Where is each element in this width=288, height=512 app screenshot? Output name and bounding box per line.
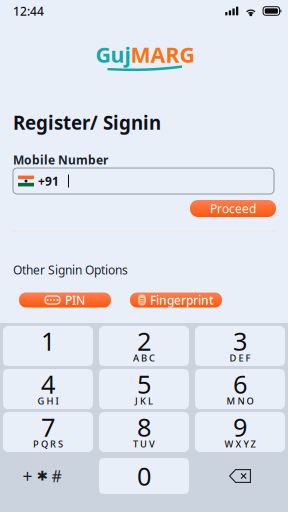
staticText: 3 xyxy=(233,324,247,358)
staticText: 8 xyxy=(137,410,151,444)
button[interactable]: 7 xyxy=(3,412,93,452)
button[interactable]: 2 xyxy=(99,326,189,366)
staticText: 2 xyxy=(137,324,151,358)
button[interactable]: 9 xyxy=(195,412,285,452)
staticText: 0 xyxy=(137,459,151,493)
staticText: 9 xyxy=(233,410,247,444)
staticText: PIN xyxy=(65,292,85,308)
button[interactable]: 0 xyxy=(99,458,189,494)
staticText: 7 xyxy=(41,410,55,444)
button[interactable]: Delete xyxy=(195,458,285,494)
staticText: J K L xyxy=(135,395,153,407)
staticText: P Q R S xyxy=(33,438,63,450)
button[interactable]: 4 xyxy=(3,369,93,409)
staticText: Other Signin Options xyxy=(13,262,128,278)
button[interactable]: 3 xyxy=(195,326,285,366)
button[interactable]: Proceed xyxy=(190,200,276,217)
button[interactable]: 8 xyxy=(99,412,189,452)
button[interactable]: 1 xyxy=(3,326,93,366)
button[interactable]: 5 xyxy=(99,369,189,409)
staticText: 12:44 xyxy=(13,3,44,19)
staticText: Register/ Signin xyxy=(13,110,161,135)
staticText: Guj xyxy=(95,40,130,69)
staticText: G H I xyxy=(37,395,58,407)
staticText: 5 xyxy=(137,367,151,401)
staticText: ✱ xyxy=(36,468,47,483)
staticText: Proceed xyxy=(210,200,256,216)
button[interactable]: Symbols xyxy=(3,458,93,494)
staticText: M N O xyxy=(226,395,253,407)
staticText: +91 xyxy=(38,173,59,189)
button[interactable]: 6 xyxy=(195,369,285,409)
staticText: 1 xyxy=(41,324,55,358)
button[interactable]: Fingerprint xyxy=(130,292,222,307)
staticText: A B C xyxy=(133,352,155,364)
staticText: + xyxy=(22,464,32,487)
staticText: D E F xyxy=(229,352,250,364)
staticText: W X Y Z xyxy=(224,438,255,450)
staticText: Fingerprint xyxy=(150,292,214,308)
button[interactable]: PIN xyxy=(19,292,111,307)
staticText: 6 xyxy=(233,367,247,401)
staticText: 4 xyxy=(41,367,55,401)
staticText: Mobile Number xyxy=(13,152,108,168)
staticText: MARG xyxy=(130,40,194,69)
staticText: # xyxy=(51,465,61,487)
staticText: T U V xyxy=(133,438,155,450)
